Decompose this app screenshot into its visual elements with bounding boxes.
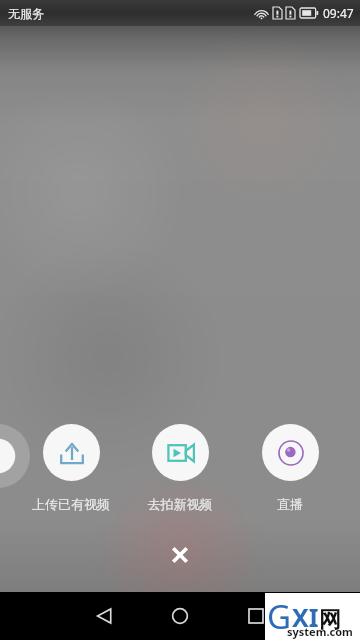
button[interactable]: 直播 (235, 424, 345, 512)
staticText: 无服务 (8, 6, 44, 21)
button[interactable]: 关闭 (156, 531, 204, 579)
button[interactable]: 返回 (82, 594, 126, 638)
button[interactable]: 最近任务 (234, 594, 278, 638)
staticText: G (267, 594, 292, 639)
button[interactable]: 上传已有视频 (16, 424, 126, 512)
staticText: 上传已有视频 (16, 496, 126, 512)
button[interactable]: 去拍新视频 (125, 424, 235, 512)
staticText: 直播 (235, 496, 345, 512)
staticText: XI (292, 600, 319, 634)
staticText: 去拍新视频 (125, 496, 235, 512)
staticText: system.com (287, 624, 353, 639)
staticText: 09:47 (323, 5, 354, 21)
button[interactable]: 主页 (158, 594, 202, 638)
staticText: 网 (319, 606, 341, 634)
